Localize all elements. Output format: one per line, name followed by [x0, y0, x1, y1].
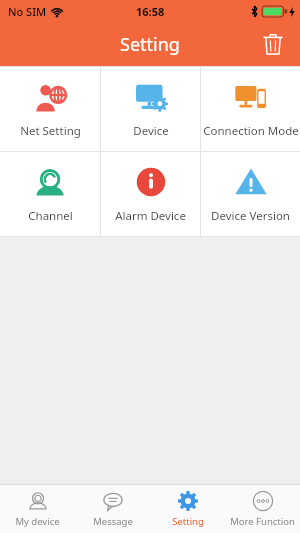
staticText: Message	[93, 515, 133, 528]
staticText: 16:58	[136, 4, 165, 19]
staticText: Device	[133, 123, 169, 139]
button[interactable]: Net Setting	[0, 67, 100, 151]
staticText: Alarm Device	[115, 208, 186, 224]
button[interactable]: Device	[101, 67, 200, 151]
staticText: More Function	[230, 515, 295, 528]
button[interactable]: Device Version	[201, 152, 300, 236]
staticText: Device Version	[211, 208, 290, 224]
staticText: Setting	[120, 32, 180, 57]
staticText: Connection Mode	[203, 123, 299, 139]
button[interactable]: Alarm Device	[101, 152, 200, 236]
staticText: Channel	[28, 208, 73, 224]
button[interactable]: More Function	[225, 485, 300, 533]
button[interactable]: Message	[75, 485, 150, 533]
button[interactable]: Setting	[150, 485, 225, 533]
button[interactable]: Connection Mode	[201, 67, 300, 151]
staticText: My device	[15, 515, 60, 528]
staticText: Net Setting	[20, 123, 81, 139]
button[interactable]: Channel	[0, 152, 100, 236]
button[interactable]: Delete	[256, 27, 290, 61]
staticText: Setting	[172, 515, 204, 528]
staticText: No SIM	[8, 4, 47, 19]
button[interactable]: My device	[0, 485, 75, 533]
